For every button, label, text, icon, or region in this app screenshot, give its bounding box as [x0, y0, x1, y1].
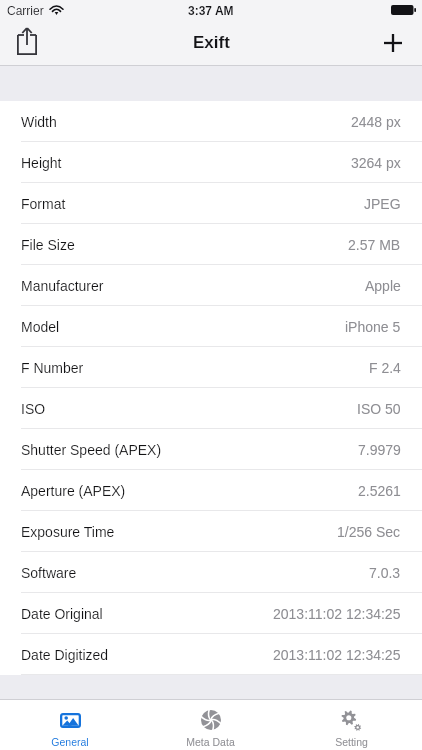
button[interactable]: Meta Data [140, 700, 281, 750]
staticText: Meta Data [186, 736, 235, 748]
staticText: Setting [335, 736, 368, 748]
staticText: General [51, 736, 89, 748]
button[interactable]: Share [0, 20, 54, 65]
staticText: 7.0.3 [369, 565, 401, 581]
staticText: Apple [365, 278, 401, 294]
staticText: Aperture (APEX) [21, 483, 126, 499]
staticText: 7.9979 [358, 442, 401, 458]
button[interactable]: ISO [0, 388, 422, 429]
staticText: Height [21, 155, 62, 171]
staticText: Model [21, 319, 60, 335]
staticText: 2.57 MB [348, 237, 401, 253]
button[interactable]: Exposure Time [0, 511, 422, 552]
staticText: Exift [193, 33, 230, 52]
button[interactable]: File Size [0, 224, 422, 265]
button[interactable]: Date Original [0, 593, 422, 634]
button[interactable]: Format [0, 183, 422, 224]
staticText: 2448 px [351, 114, 401, 130]
staticText: Date Original [21, 606, 103, 622]
staticText: Width [21, 114, 57, 130]
button[interactable]: Add [364, 20, 422, 65]
button[interactable]: Width [0, 101, 422, 142]
button[interactable]: General [0, 700, 140, 750]
staticText: ISO [21, 401, 46, 417]
staticText: Manufacturer [21, 278, 104, 294]
staticText: Date Digitized [21, 647, 109, 663]
button[interactable]: Model [0, 306, 422, 347]
staticText: 2013:11:02 12:34:25 [273, 606, 401, 622]
staticText: Software [21, 565, 77, 581]
staticText: ISO 50 [357, 401, 401, 417]
staticText: Format [21, 196, 66, 212]
staticText: 3:37 AM [188, 4, 234, 17]
button[interactable]: Software [0, 552, 422, 593]
staticText: 2.5261 [358, 483, 401, 499]
button[interactable]: Shutter Speed (APEX) [0, 429, 422, 470]
staticText: 3264 px [351, 155, 401, 171]
staticText: F Number [21, 360, 84, 376]
staticText: Shutter Speed (APEX) [21, 442, 162, 458]
button[interactable]: Manufacturer [0, 265, 422, 306]
button[interactable]: Height [0, 142, 422, 183]
staticText: F 2.4 [369, 360, 401, 376]
staticText: 2013:11:02 12:34:25 [273, 647, 401, 663]
button[interactable]: F Number [0, 347, 422, 388]
button[interactable]: Setting [281, 700, 422, 750]
staticText: Exposure Time [21, 524, 115, 540]
button[interactable]: Date Digitized [0, 634, 422, 675]
staticText: File Size [21, 237, 75, 253]
staticText: 1/256 Sec [337, 524, 401, 540]
staticText: JPEG [364, 196, 401, 212]
button[interactable]: Aperture (APEX) [0, 470, 422, 511]
staticText: Carrier [7, 4, 44, 17]
staticText: iPhone 5 [345, 319, 401, 335]
